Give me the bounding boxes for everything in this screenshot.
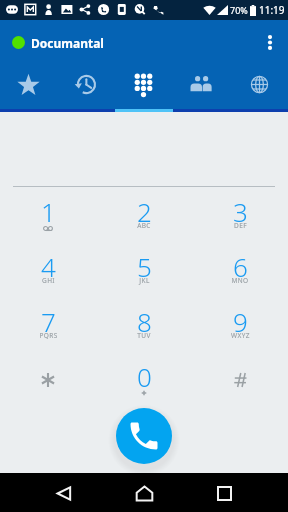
button[interactable]: Web: [230, 60, 288, 112]
staticText: 2: [137, 194, 152, 229]
staticText: 4: [41, 249, 56, 284]
staticText: 3: [233, 194, 248, 229]
staticText: MNO: [231, 276, 249, 285]
staticText: Documantal: [31, 35, 104, 51]
staticText: TUV: [137, 331, 151, 340]
button[interactable]: 8: [96, 293, 192, 348]
staticText: 11:19: [259, 3, 285, 17]
button[interactable]: 3: [192, 183, 288, 238]
button[interactable]: *: [0, 348, 96, 403]
staticText: 0: [137, 359, 152, 394]
button[interactable]: 1: [0, 183, 96, 238]
staticText: PQRS: [39, 331, 58, 340]
button[interactable]: Call: [116, 408, 172, 464]
staticText: JKL: [139, 276, 150, 285]
staticText: ABC: [137, 221, 151, 230]
button[interactable]: Home: [112, 473, 176, 512]
staticText: GHI: [42, 276, 55, 285]
button[interactable]: 9: [192, 293, 288, 348]
staticText: 9: [233, 304, 248, 339]
button[interactable]: Contacts: [172, 60, 230, 112]
button[interactable]: 6: [192, 238, 288, 293]
staticText: 6: [233, 249, 248, 284]
button[interactable]: Recents: [57, 60, 114, 112]
staticText: WXYZ: [231, 331, 250, 340]
staticText: 8: [137, 304, 152, 339]
button[interactable]: Back: [32, 473, 96, 512]
button[interactable]: 0: [96, 348, 192, 403]
button[interactable]: Dialpad: [114, 60, 172, 112]
button[interactable]: Favourites: [0, 60, 57, 112]
button[interactable]: Recent apps: [192, 473, 256, 512]
staticText: DEF: [234, 221, 247, 230]
staticText: 70%: [230, 4, 248, 16]
button[interactable]: More options: [252, 24, 288, 60]
button[interactable]: #: [192, 348, 288, 403]
button[interactable]: 2: [96, 183, 192, 238]
staticText: 1: [41, 194, 56, 229]
staticText: 5: [137, 249, 152, 284]
button[interactable]: 7: [0, 293, 96, 348]
button[interactable]: 5: [96, 238, 192, 293]
staticText: 7: [41, 304, 56, 339]
button[interactable]: 4: [0, 238, 96, 293]
